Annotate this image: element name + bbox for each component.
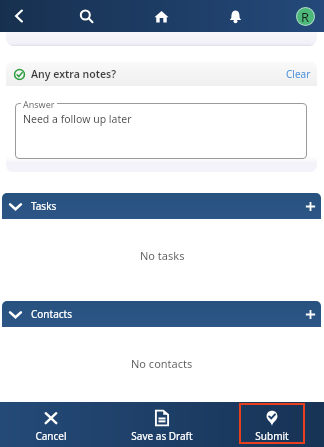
staticText: R (301, 8, 310, 26)
staticText: Tasks (31, 199, 57, 213)
button[interactable]: Notifications (221, 0, 249, 32)
staticText: Answer (23, 98, 55, 110)
staticText: No tasks (140, 248, 185, 263)
staticText: Need a follow up later (23, 112, 132, 126)
button[interactable]: Clear (284, 64, 313, 84)
button[interactable]: Back (5, 0, 33, 32)
staticText: Any extra notes? (31, 67, 117, 81)
button[interactable]: Cancel (18, 403, 84, 444)
staticText: Save as Draft (131, 429, 193, 443)
staticText: No contacts (131, 356, 193, 371)
button[interactable]: Save as Draft (129, 403, 195, 444)
button[interactable]: Search (72, 0, 100, 32)
staticText: Clear (286, 67, 311, 81)
button[interactable]: Contacts (2, 301, 321, 327)
staticText: Submit (255, 429, 289, 443)
button[interactable]: Tasks (2, 193, 321, 219)
staticText: Contacts (31, 307, 72, 321)
staticText: Cancel (35, 429, 67, 443)
button[interactable]: Profile (291, 0, 319, 32)
button[interactable]: Submit (239, 403, 305, 444)
button[interactable]: Home (147, 0, 175, 32)
